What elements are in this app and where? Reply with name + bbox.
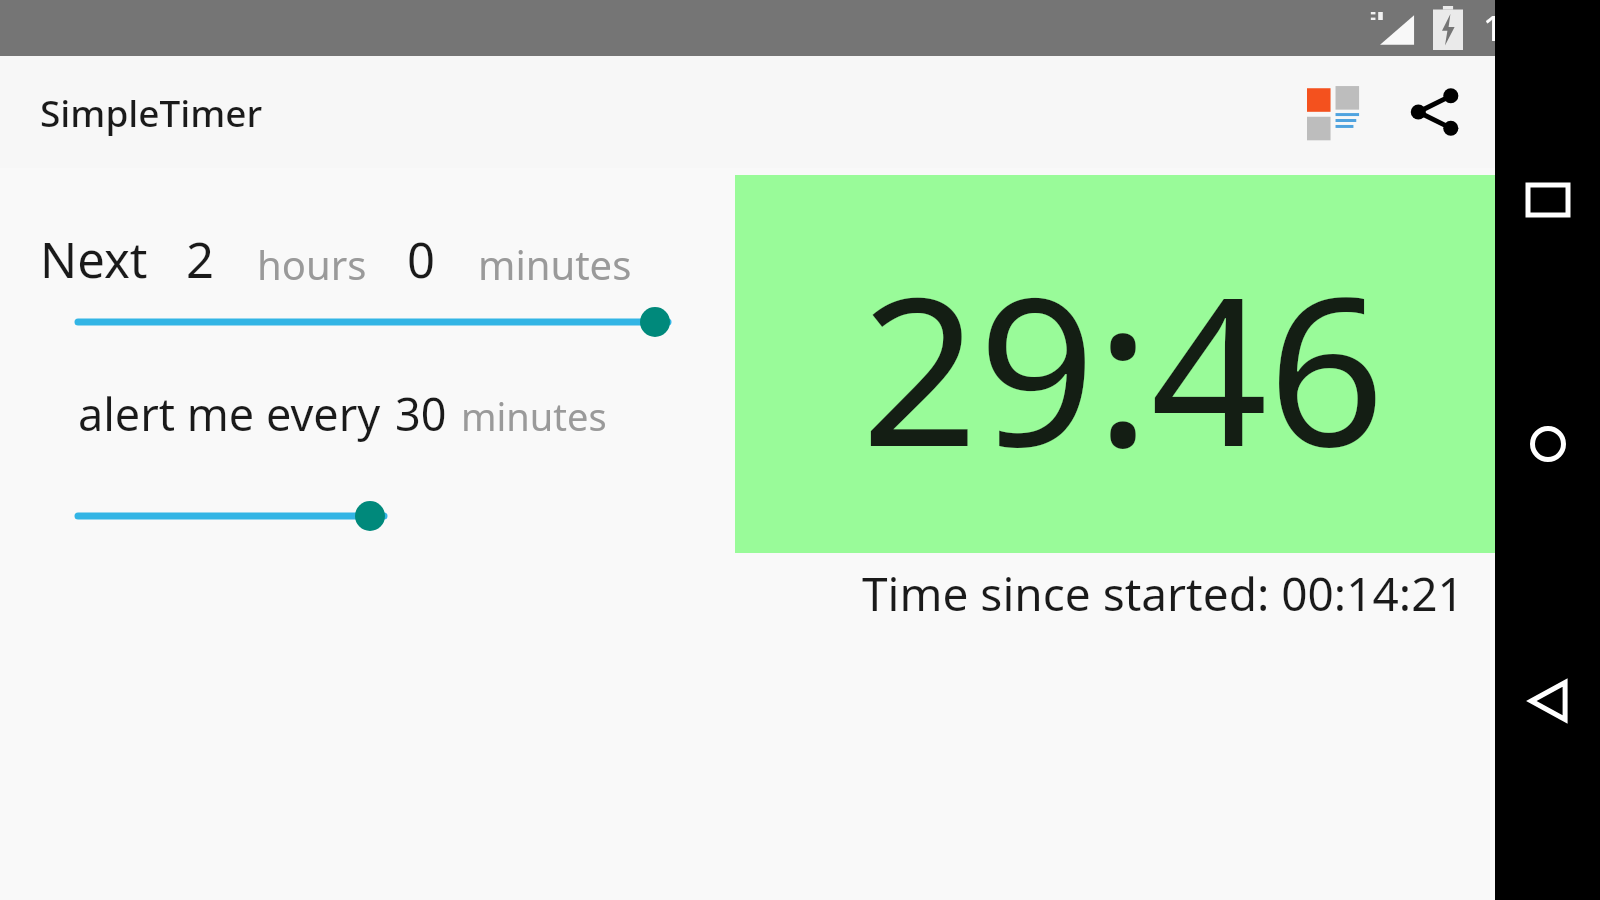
staticText: minutes [478,237,632,291]
button[interactable]: Slider [0,282,735,362]
button[interactable]: Share [1386,64,1482,160]
staticText: 11:59 [1483,5,1570,51]
button[interactable]: 29:46 [735,175,1495,553]
staticText: hours [257,237,367,291]
staticText: 29:46 [861,227,1385,506]
staticText: Next [40,226,148,293]
staticText: minutes [461,390,607,442]
staticText: 0 [407,226,436,293]
staticText: SimpleTimer [40,87,263,137]
button[interactable]: Home [1495,396,1600,491]
staticText: alert me every [78,383,381,444]
staticText: Time since started: 00:14:21 [862,562,1464,625]
staticText: 2 [186,226,215,293]
button[interactable]: Recent apps [1495,152,1600,247]
button[interactable]: Slider [0,476,735,556]
button[interactable]: More options [1482,64,1578,160]
staticText: 30 [395,383,447,444]
button[interactable]: App shortcut [1290,64,1386,160]
button[interactable]: Back [1495,653,1600,748]
